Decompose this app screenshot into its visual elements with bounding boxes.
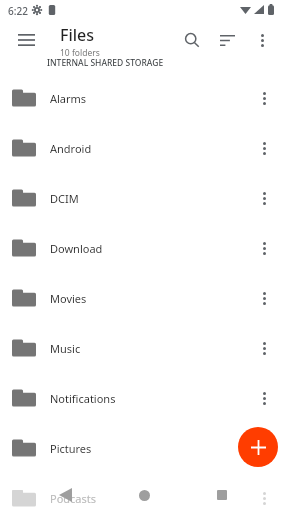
- staticText: Music: [50, 341, 244, 356]
- button[interactable]: Alarms: [0, 73, 288, 123]
- button[interactable]: DCIM: [0, 173, 288, 223]
- button[interactable]: Download: [0, 223, 288, 273]
- button[interactable]: More options for Pictures: [244, 428, 284, 468]
- staticText: Pictures: [50, 441, 244, 456]
- button[interactable]: Back: [48, 478, 82, 512]
- staticText: Notifications: [50, 391, 244, 406]
- button[interactable]: More options for DCIM: [244, 178, 284, 218]
- button[interactable]: Podcasts: [0, 473, 288, 512]
- button[interactable]: Music: [0, 323, 288, 373]
- staticText: DCIM: [50, 191, 244, 206]
- button[interactable]: Open navigation drawer: [8, 22, 44, 58]
- button[interactable]: Pictures: [0, 423, 288, 473]
- button[interactable]: More options for Alarms: [244, 78, 284, 118]
- button[interactable]: More options for Notifications: [244, 378, 284, 418]
- staticText: Files: [60, 24, 95, 46]
- button[interactable]: More options for Download: [244, 228, 284, 268]
- staticText: Download: [50, 241, 244, 256]
- staticText: INTERNAL SHARED STORAGE: [47, 57, 164, 69]
- staticText: Movies: [50, 291, 244, 306]
- staticText: 6:22: [8, 4, 28, 18]
- button[interactable]: More options for Android: [244, 128, 284, 168]
- button[interactable]: More options for Movies: [244, 278, 284, 318]
- button[interactable]: Sort: [209, 22, 245, 58]
- button[interactable]: Home: [127, 478, 161, 512]
- button[interactable]: More options for Podcasts: [244, 478, 284, 512]
- button[interactable]: More options: [244, 22, 280, 58]
- button[interactable]: Notifications: [0, 373, 288, 423]
- button[interactable]: Search: [174, 22, 210, 58]
- button[interactable]: Android: [0, 123, 288, 173]
- button[interactable]: Create new: [238, 427, 278, 467]
- button[interactable]: More options for Music: [244, 328, 284, 368]
- button[interactable]: Recent apps: [205, 478, 239, 512]
- staticText: 10 folders: [60, 47, 100, 59]
- staticText: Alarms: [50, 91, 244, 106]
- staticText: Android: [50, 141, 244, 156]
- button[interactable]: Movies: [0, 273, 288, 323]
- staticText: Podcasts: [50, 491, 244, 506]
